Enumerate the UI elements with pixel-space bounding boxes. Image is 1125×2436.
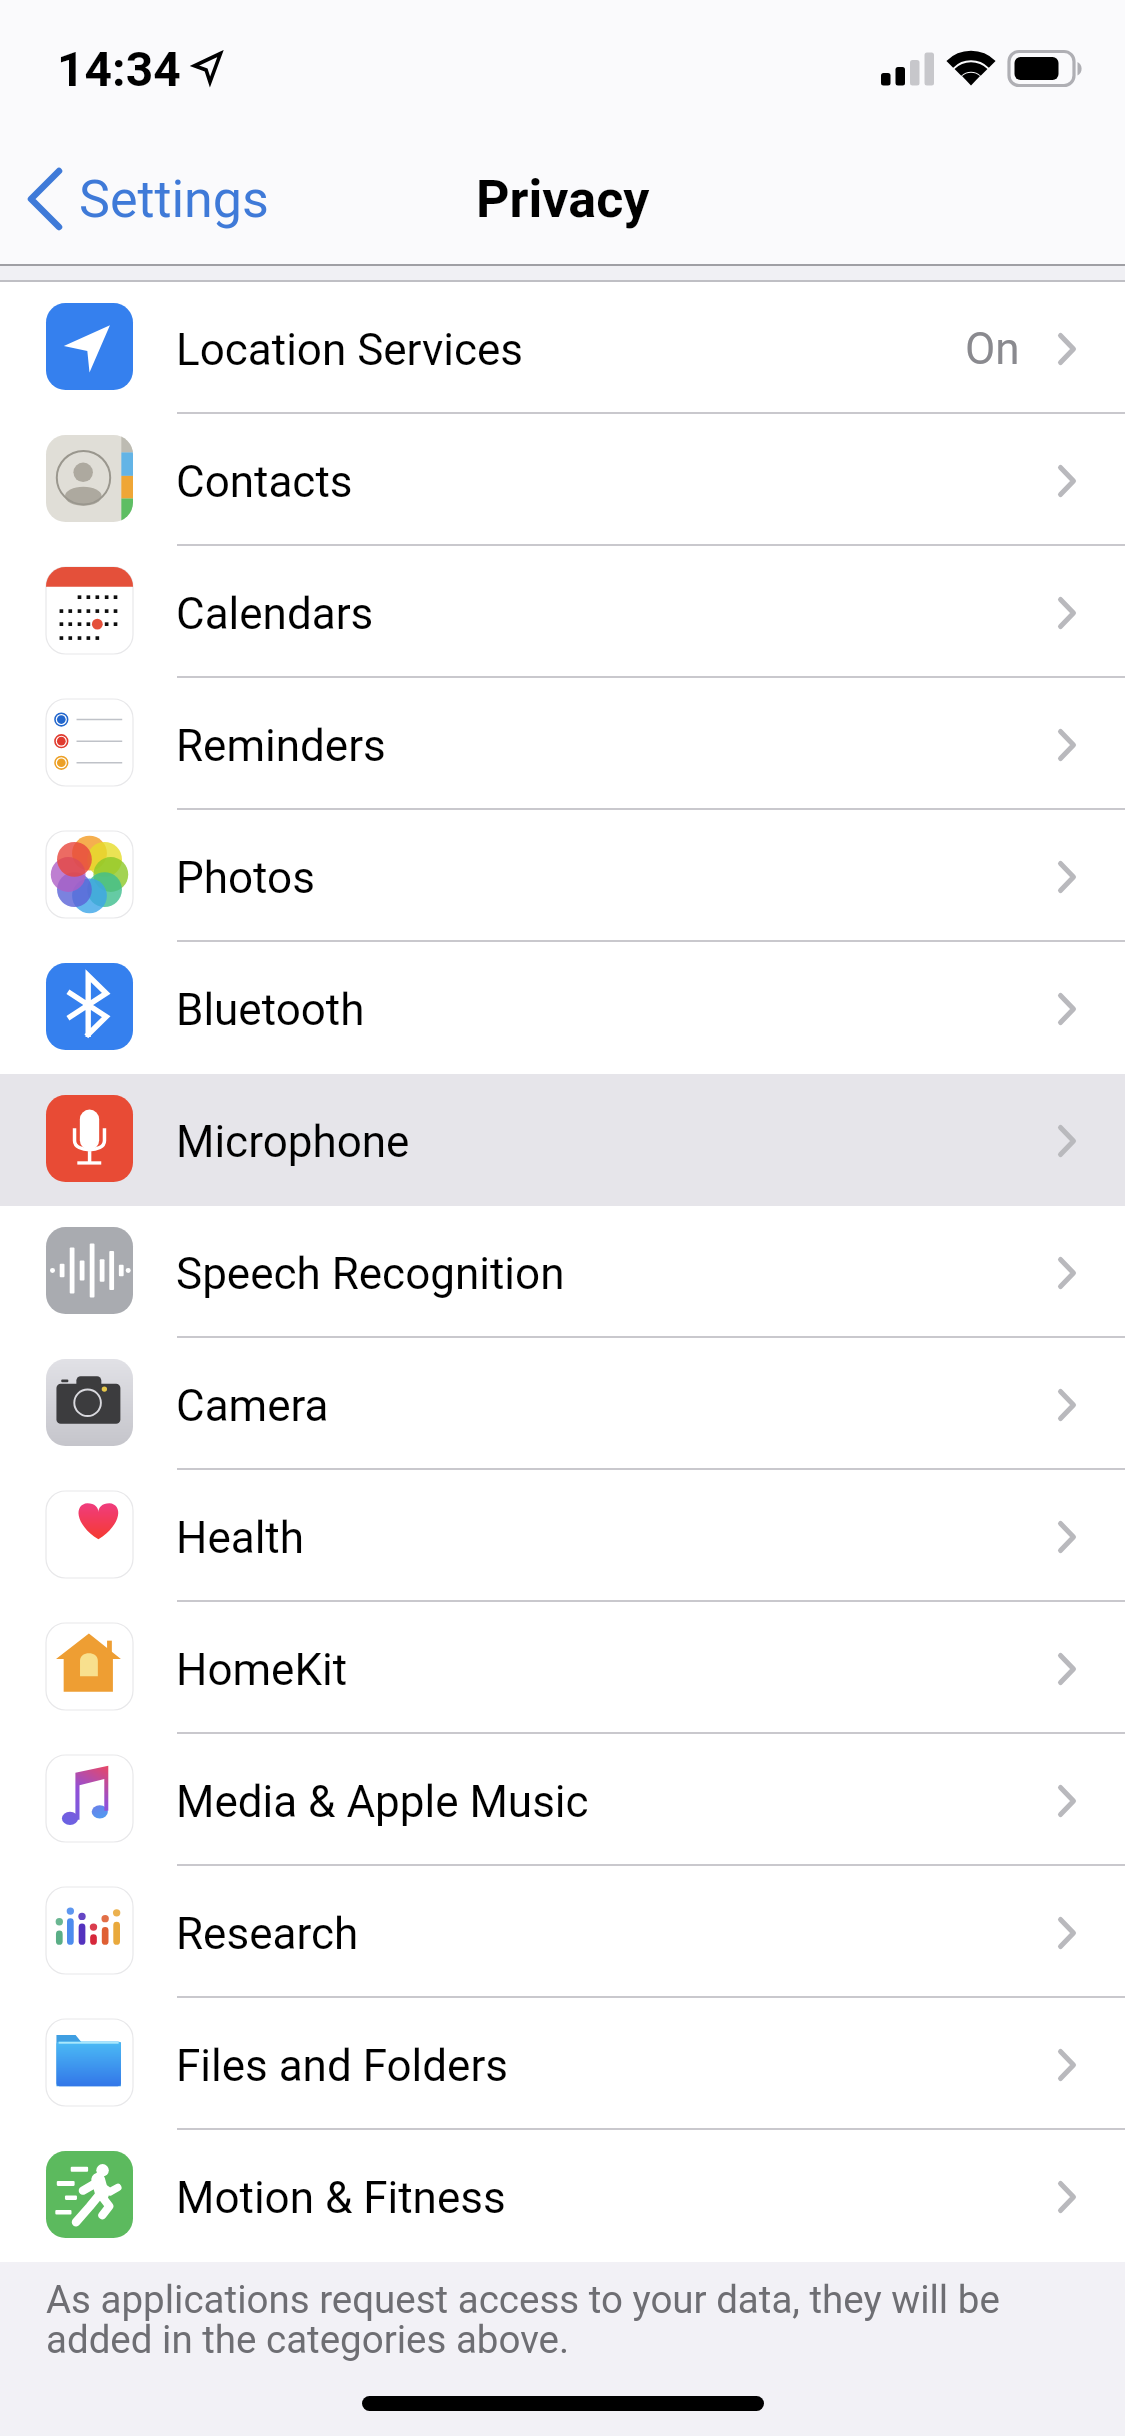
button[interactable]: Motion & Fitness — [0, 2130, 1125, 2262]
staticText: Bluetooth — [176, 984, 365, 1036]
staticText: Contacts — [176, 456, 353, 508]
staticText: Motion & Fitness — [176, 2172, 506, 2224]
staticText: Media & Apple Music — [176, 1776, 589, 1828]
staticText: Camera — [176, 1380, 329, 1432]
staticText: Location Services — [176, 324, 523, 376]
button[interactable]: Location Services — [0, 282, 1125, 414]
staticText: HomeKit — [176, 1644, 348, 1696]
staticText: Health — [176, 1512, 304, 1564]
button[interactable]: Contacts — [0, 414, 1125, 546]
staticText: As applications request access to your d… — [46, 2277, 1000, 2322]
staticText: Settings — [79, 169, 269, 230]
staticText: Calendars — [176, 588, 374, 640]
staticText: added in the categories above. — [46, 2317, 570, 2362]
button[interactable]: Camera — [0, 1338, 1125, 1470]
button[interactable]: Bluetooth — [0, 942, 1125, 1074]
button[interactable]: Files and Folders — [0, 1998, 1125, 2130]
button[interactable]: Reminders — [0, 678, 1125, 810]
button[interactable]: Media & Apple Music — [0, 1734, 1125, 1866]
button[interactable]: Speech Recognition — [0, 1206, 1125, 1338]
staticText: Privacy — [476, 169, 650, 230]
staticText: Reminders — [176, 720, 386, 772]
staticText: Microphone — [176, 1116, 410, 1168]
button[interactable]: Photos — [0, 810, 1125, 942]
staticText: Files and Folders — [176, 2040, 509, 2092]
button[interactable]: Microphone — [0, 1074, 1125, 1206]
staticText: Speech Recognition — [176, 1248, 565, 1300]
staticText: On — [965, 323, 1020, 375]
staticText: Photos — [176, 852, 315, 904]
button[interactable]: Settings — [0, 160, 283, 238]
button[interactable]: Research — [0, 1866, 1125, 1998]
button[interactable]: Health — [0, 1470, 1125, 1602]
button[interactable]: HomeKit — [0, 1602, 1125, 1734]
staticText: 14:34 — [57, 41, 181, 97]
staticText: Research — [176, 1908, 359, 1960]
button[interactable]: Calendars — [0, 546, 1125, 678]
